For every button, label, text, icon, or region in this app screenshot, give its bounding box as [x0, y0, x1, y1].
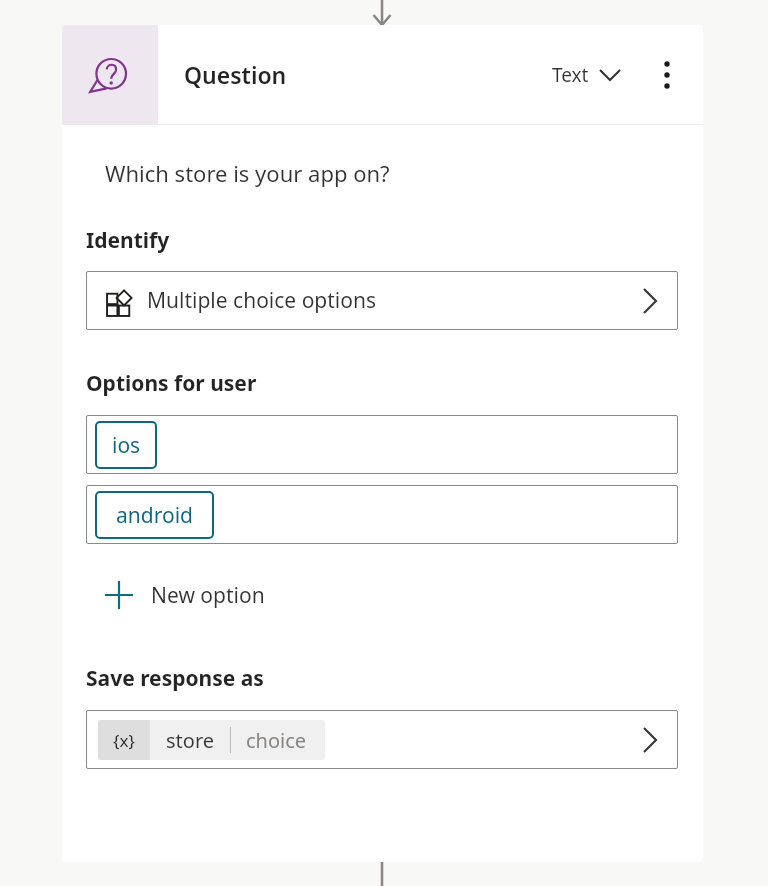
staticText: Identify [86, 226, 170, 255]
staticText: Text [552, 62, 589, 88]
button[interactable]: Question step icon [62, 25, 158, 124]
staticText: Multiple choice options [147, 286, 377, 315]
staticText: {x} [113, 729, 135, 752]
button[interactable]: android [86, 485, 678, 544]
button[interactable]: ios [86, 415, 678, 474]
staticText: store [166, 727, 215, 754]
staticText: Question [184, 59, 287, 90]
button[interactable]: {x} [86, 710, 678, 769]
staticText: Which store is your app on? [105, 158, 390, 188]
staticText: Options for user [86, 369, 257, 398]
staticText: New option [151, 581, 265, 610]
staticText: Save response as [86, 664, 264, 693]
staticText: choice [246, 727, 307, 754]
staticText: ios [112, 431, 141, 460]
button[interactable]: More options [645, 53, 689, 97]
staticText: android [116, 501, 193, 530]
button[interactable]: Text [546, 54, 627, 96]
button[interactable]: {x} [98, 720, 325, 760]
button[interactable]: New option [100, 572, 269, 618]
button[interactable]: Multiple choice options [86, 271, 678, 330]
